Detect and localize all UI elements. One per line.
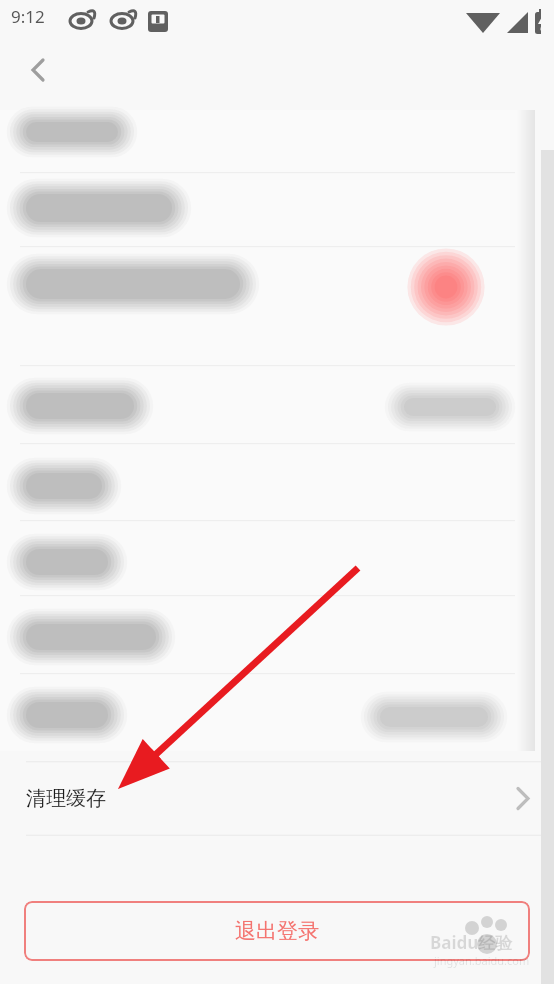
staticText: 9:12 [11, 5, 45, 28]
staticText: 退出登录 [235, 918, 319, 944]
button[interactable]: 清理缓存 [0, 761, 541, 836]
button[interactable]: Back [14, 46, 62, 94]
staticText: 清理缓存 [26, 786, 106, 811]
staticText: jingyan.baidu.com [434, 953, 530, 968]
staticText: Baidu经验 [430, 931, 513, 954]
button[interactable]: 退出登录 [24, 901, 530, 961]
